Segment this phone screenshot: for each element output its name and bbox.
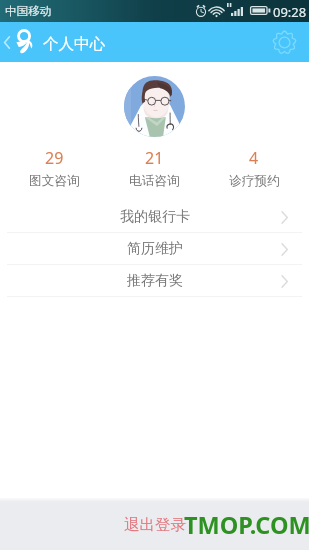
staticText: 09:28: [273, 3, 307, 21]
button[interactable]: 我的银行卡: [0, 201, 309, 233]
staticText: 个人中心: [43, 34, 105, 54]
button[interactable]: 21: [104, 147, 204, 189]
button[interactable]: 退出登录: [0, 502, 309, 550]
button[interactable]: 推荐有奖: [0, 265, 309, 297]
button[interactable]: Settings: [268, 26, 300, 58]
button[interactable]: 29: [5, 147, 104, 189]
staticText: 诊疗预约: [229, 173, 280, 189]
staticText: TMOP.COM: [184, 509, 309, 541]
staticText: 我的银行卡: [120, 208, 190, 226]
staticText: 4: [249, 147, 259, 169]
button[interactable]: Back: [0, 22, 14, 62]
staticText: 推荐有奖: [127, 272, 183, 290]
button[interactable]: 简历维护: [0, 233, 309, 265]
staticText: 退出登录: [124, 515, 186, 535]
staticText: 电话咨询: [129, 173, 180, 189]
staticText: 29: [45, 147, 64, 169]
button[interactable]: 4: [204, 147, 304, 189]
staticText: 图文咨询: [29, 173, 80, 189]
staticText: 简历维护: [127, 240, 183, 258]
staticText: 中国移动: [5, 4, 52, 19]
staticText: 21: [145, 147, 164, 169]
